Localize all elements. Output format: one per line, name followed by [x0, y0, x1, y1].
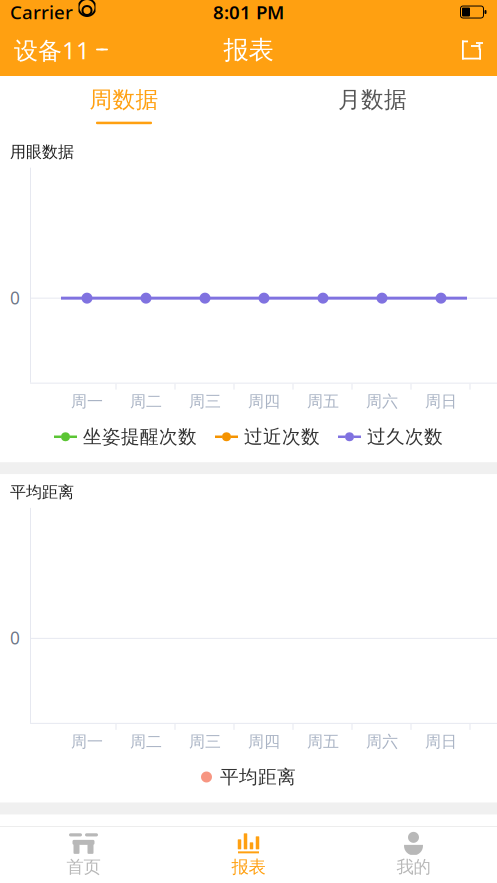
staticText: 周五 [307, 732, 339, 752]
staticText: 周二 [130, 392, 162, 411]
staticText: 周四 [248, 732, 280, 752]
button[interactable]: Share [446, 30, 497, 69]
staticText: 设备11 [14, 34, 90, 66]
staticText: 周日 [425, 732, 457, 752]
staticText: 用眼数据 [10, 142, 74, 162]
staticText: 平均距离 [10, 482, 74, 502]
staticText: 报表 [223, 34, 273, 65]
staticText: 周三 [189, 392, 221, 411]
staticText: 周一 [71, 732, 103, 752]
staticText: 我的 [396, 856, 430, 878]
button[interactable]: 报表 [166, 827, 331, 883]
staticText: 首页 [66, 856, 100, 878]
button[interactable]: 月数据 [248, 76, 497, 134]
staticText: 周数据 [89, 86, 158, 114]
staticText: 8:01 PM [213, 0, 284, 24]
button[interactable]: 设备11 [0, 26, 123, 74]
staticText: 周日 [425, 392, 457, 411]
staticText: 周四 [248, 392, 280, 411]
staticText: 周二 [130, 732, 162, 752]
staticText: 周六 [366, 392, 398, 411]
staticText: 周六 [366, 732, 398, 752]
button[interactable]: 首页 [1, 827, 166, 883]
staticText: 0 [10, 286, 20, 309]
staticText: 周三 [189, 732, 221, 752]
staticText: 平均距离 [220, 765, 296, 788]
button[interactable]: 我的 [331, 827, 496, 883]
staticText: Carrier [10, 0, 73, 24]
staticText: 坐姿提醒次数 [83, 425, 197, 448]
staticText: 0 [10, 626, 20, 649]
staticText: 月数据 [338, 86, 407, 114]
staticText: 周一 [71, 392, 103, 411]
staticText: 周五 [307, 392, 339, 411]
button[interactable]: 周数据 [0, 76, 248, 134]
staticText: 过近次数 [244, 425, 320, 448]
staticText: 报表 [231, 856, 265, 878]
staticText: 过久次数 [367, 425, 443, 448]
